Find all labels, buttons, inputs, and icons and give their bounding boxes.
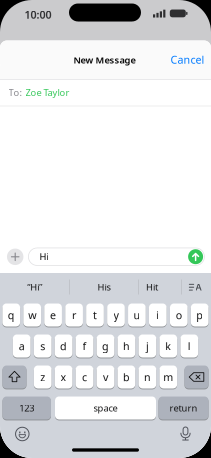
button[interactable]: space bbox=[55, 395, 156, 420]
button[interactable]: j bbox=[139, 333, 156, 358]
button[interactable]: x bbox=[55, 364, 72, 389]
staticText: f bbox=[82, 339, 86, 353]
staticText: Zoe Taylor bbox=[25, 86, 69, 98]
staticText: A bbox=[196, 281, 202, 293]
staticText: b bbox=[123, 370, 130, 384]
button[interactable] bbox=[178, 426, 192, 441]
staticText: space bbox=[93, 402, 117, 414]
staticText: u bbox=[133, 308, 140, 322]
button[interactable] bbox=[188, 249, 203, 264]
button[interactable]: return bbox=[158, 395, 208, 420]
button[interactable]: t bbox=[86, 302, 104, 327]
button[interactable]: d bbox=[55, 333, 72, 358]
button[interactable]: g bbox=[97, 333, 114, 358]
staticText: q bbox=[8, 308, 15, 322]
staticText: c bbox=[82, 370, 87, 384]
button[interactable]: Hi bbox=[28, 248, 204, 265]
button[interactable]: q bbox=[2, 302, 20, 327]
button[interactable]: y bbox=[107, 302, 125, 327]
staticText: j bbox=[146, 339, 149, 353]
button[interactable]: n bbox=[139, 364, 156, 389]
button[interactable]: m bbox=[159, 364, 177, 389]
staticText: 123 bbox=[19, 402, 34, 414]
staticText: e bbox=[50, 308, 56, 322]
staticText: v bbox=[103, 370, 108, 384]
staticText: To: bbox=[8, 86, 22, 98]
staticText: g bbox=[102, 339, 109, 353]
button[interactable]: b bbox=[118, 364, 135, 389]
staticText: x bbox=[61, 370, 67, 384]
staticText: w bbox=[28, 308, 36, 322]
staticText: His bbox=[97, 281, 110, 293]
button[interactable]: k bbox=[159, 333, 177, 358]
button[interactable]: Hit bbox=[131, 273, 173, 300]
button[interactable]: s bbox=[34, 333, 52, 358]
button[interactable] bbox=[16, 427, 29, 441]
staticText: k bbox=[165, 339, 171, 353]
staticText: h bbox=[123, 339, 130, 353]
staticText: p bbox=[196, 308, 203, 322]
staticText: y bbox=[113, 308, 118, 322]
button[interactable]: To: bbox=[0, 79, 211, 105]
button[interactable]: v bbox=[97, 364, 114, 389]
staticText: i bbox=[156, 308, 159, 322]
button[interactable]: c bbox=[76, 364, 93, 389]
staticText: Hi bbox=[39, 250, 48, 263]
staticText: l bbox=[188, 339, 191, 353]
button[interactable] bbox=[7, 249, 23, 265]
button[interactable]: e bbox=[44, 302, 62, 327]
button[interactable]: i bbox=[149, 302, 167, 327]
staticText: d bbox=[60, 339, 67, 353]
button[interactable] bbox=[184, 364, 208, 389]
button[interactable]: p bbox=[191, 302, 208, 327]
staticText: 10:00 bbox=[24, 7, 51, 22]
staticText: t bbox=[93, 308, 97, 322]
button[interactable]: r bbox=[65, 302, 83, 327]
staticText: “Hi” bbox=[27, 281, 42, 293]
button[interactable] bbox=[2, 364, 26, 389]
staticText: return bbox=[169, 402, 197, 414]
button[interactable]: a bbox=[13, 333, 30, 358]
button[interactable]: f bbox=[76, 333, 93, 358]
staticText: Cancel bbox=[170, 52, 204, 67]
button[interactable]: u bbox=[128, 302, 146, 327]
staticText: Hit bbox=[146, 281, 158, 293]
staticText: s bbox=[40, 339, 45, 353]
button[interactable]: A bbox=[182, 273, 211, 300]
button[interactable]: o bbox=[170, 302, 188, 327]
button[interactable]: 123 bbox=[2, 395, 51, 420]
button[interactable]: l bbox=[180, 333, 198, 358]
staticText: m bbox=[163, 370, 173, 384]
staticText: z bbox=[40, 370, 45, 384]
button[interactable]: His bbox=[70, 273, 138, 300]
staticText: r bbox=[72, 308, 76, 322]
staticText: New Message bbox=[73, 54, 135, 66]
button[interactable]: z bbox=[34, 364, 52, 389]
staticText: o bbox=[176, 308, 182, 322]
button[interactable]: w bbox=[23, 302, 41, 327]
staticText: a bbox=[19, 339, 25, 353]
button[interactable]: h bbox=[118, 333, 135, 358]
staticText: n bbox=[144, 370, 151, 384]
button[interactable]: “Hi” bbox=[0, 273, 69, 300]
button[interactable]: Cancel bbox=[170, 52, 204, 67]
